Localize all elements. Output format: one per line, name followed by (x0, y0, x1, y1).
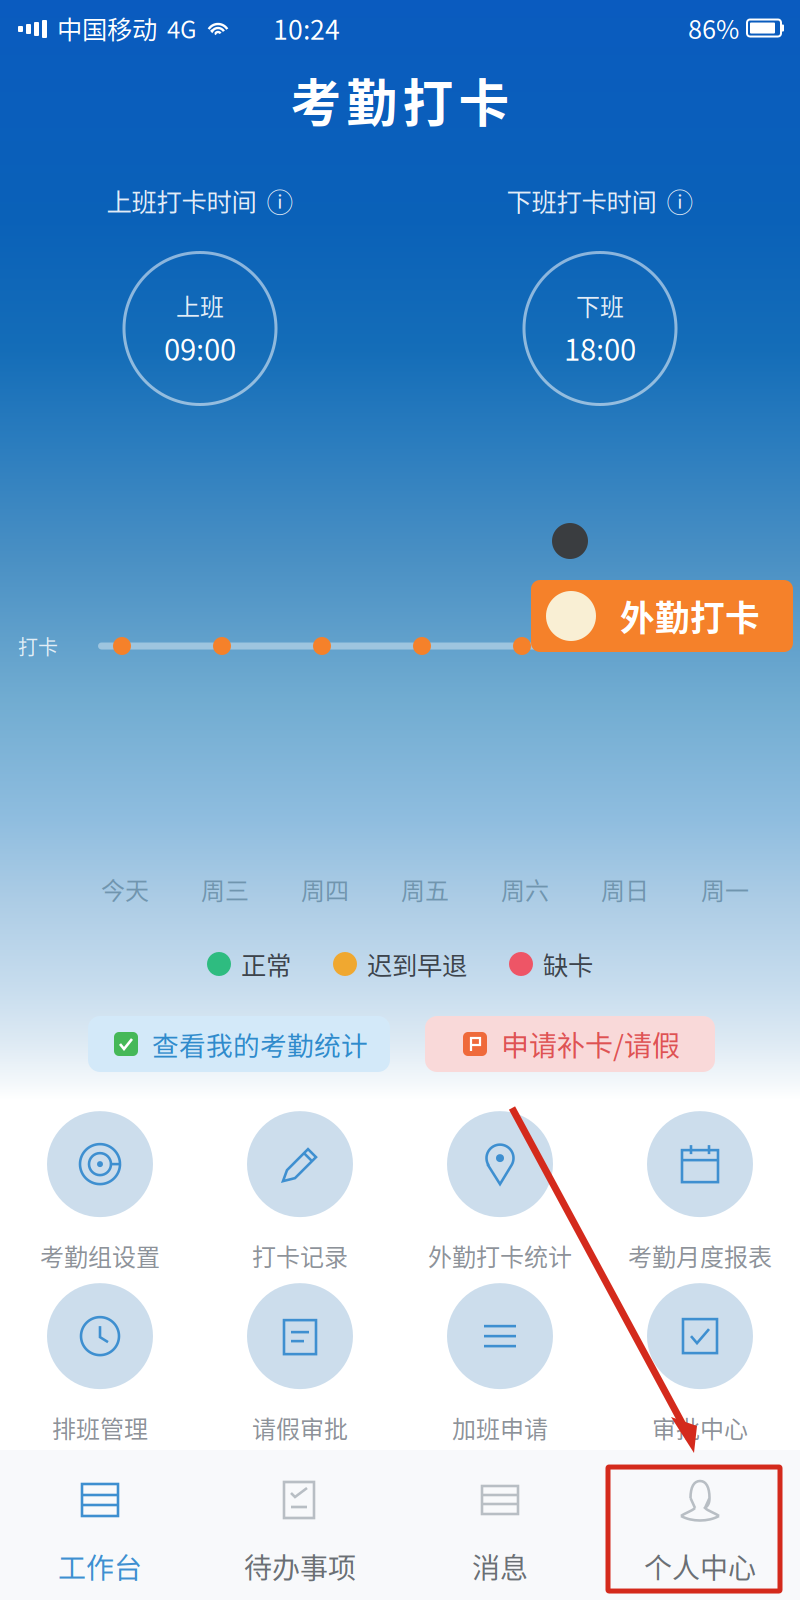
button[interactable]: 请假审批 (200, 1271, 400, 1443)
button[interactable]: 考勤月度报表 (600, 1099, 800, 1271)
staticText: 18:00 (564, 327, 636, 369)
staticText: 中国移动 (57, 10, 157, 46)
staticText: 个人中心 (644, 1546, 756, 1586)
staticText: 上班打卡时间 (106, 182, 256, 219)
staticText: 加班申请 (452, 1410, 548, 1445)
staticText: 下班打卡时间 (506, 182, 656, 219)
staticText: 考勤组设置 (40, 1238, 160, 1273)
staticText: 今天 (101, 872, 149, 906)
staticText: 周日 (601, 872, 649, 906)
staticText: 外勤打卡 (620, 591, 760, 641)
button[interactable]: 消息 (400, 1450, 600, 1600)
button[interactable]: 审批中心 (600, 1271, 800, 1443)
staticText: 审批中心 (652, 1410, 748, 1445)
staticText: 周五 (401, 872, 449, 906)
staticText: 4G (167, 11, 197, 45)
staticText: 外勤打卡统计 (428, 1238, 572, 1273)
staticText: 周一 (701, 872, 749, 906)
staticText: 09:00 (164, 327, 236, 369)
staticText: 86% (688, 10, 739, 46)
staticText: 10:24 (273, 9, 340, 47)
staticText: 迟到早退 (367, 946, 467, 982)
staticText: 考勤月度报表 (628, 1238, 772, 1273)
staticText: 请假审批 (252, 1410, 348, 1445)
staticText: 上班 (176, 288, 224, 323)
button[interactable]: 申请补卡/请假 (425, 1016, 715, 1072)
staticText: 打卡 (18, 631, 58, 660)
staticText: 工作台 (58, 1546, 142, 1586)
staticText: 周六 (501, 872, 549, 906)
staticText: ⓘ (666, 181, 693, 220)
staticText: 申请补卡/请假 (501, 1024, 680, 1064)
staticText: 周四 (301, 872, 349, 906)
staticText: 周三 (201, 872, 249, 906)
staticText: 考勤打卡 (290, 63, 509, 137)
button[interactable]: 加班申请 (400, 1271, 600, 1443)
staticText: 排班管理 (52, 1410, 148, 1445)
staticText: 缺卡 (543, 946, 593, 982)
staticText: 下班 (576, 288, 624, 323)
button[interactable]: 个人中心 (600, 1450, 800, 1600)
button[interactable]: 工作台 (0, 1450, 200, 1600)
staticText: 正常 (241, 946, 291, 982)
button[interactable]: 待办事项 (200, 1450, 400, 1600)
staticText: 待办事项 (244, 1546, 356, 1586)
button[interactable]: 考勤组设置 (0, 1099, 200, 1271)
button[interactable]: 外勤打卡 (526, 523, 793, 652)
button[interactable]: 排班管理 (0, 1271, 200, 1443)
button[interactable]: 外勤打卡统计 (400, 1099, 600, 1271)
staticText: 打卡记录 (252, 1238, 348, 1273)
button[interactable]: 打卡记录 (200, 1099, 400, 1271)
staticText: 消息 (472, 1546, 528, 1586)
button[interactable]: 查看我的考勤统计 (88, 1016, 390, 1072)
staticText: ⓘ (266, 181, 293, 220)
staticText: 查看我的考勤统计 (152, 1025, 368, 1063)
